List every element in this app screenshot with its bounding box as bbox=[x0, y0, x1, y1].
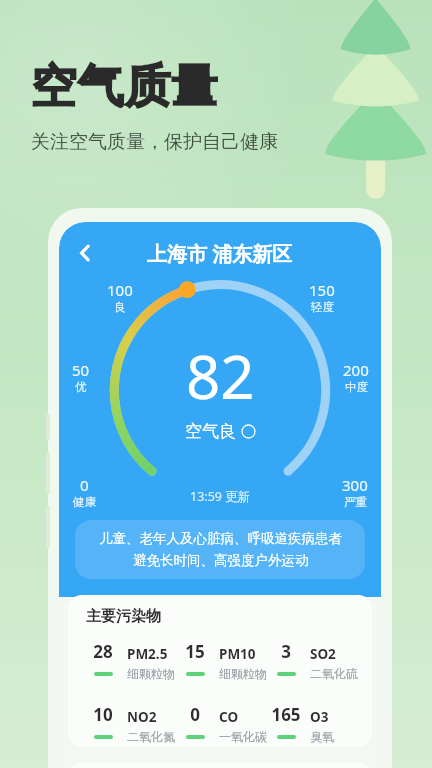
staticText: 上海市 浦东新区 bbox=[147, 240, 293, 267]
staticText: 空气良 bbox=[185, 421, 236, 442]
staticText: 100 bbox=[107, 280, 133, 300]
button[interactable]: 空气良 bbox=[185, 421, 256, 442]
button[interactable]: 165 bbox=[269, 703, 360, 744]
staticText: 200 bbox=[343, 360, 369, 380]
button[interactable]: 0 bbox=[178, 703, 269, 744]
staticText: 82 bbox=[186, 335, 255, 417]
staticText: 严重 bbox=[344, 495, 367, 509]
staticText: 空气质量 bbox=[30, 58, 218, 116]
staticText: PM2.5 bbox=[127, 645, 168, 663]
staticText: SO2 bbox=[310, 645, 336, 663]
staticText: 165 bbox=[269, 703, 303, 726]
staticText: 28 bbox=[86, 640, 120, 663]
button[interactable]: 10 bbox=[86, 703, 178, 744]
button[interactable]: 15 bbox=[178, 640, 269, 681]
staticText: CO bbox=[219, 708, 239, 726]
staticText: 良 bbox=[114, 300, 126, 314]
staticText: 150 bbox=[309, 280, 335, 300]
staticText: O3 bbox=[310, 708, 329, 726]
staticText: 中度 bbox=[345, 380, 368, 394]
staticText: NO2 bbox=[127, 708, 157, 726]
staticText: 3 bbox=[269, 640, 303, 663]
staticText: 300 bbox=[342, 475, 368, 495]
staticText: 主要污染物 bbox=[86, 607, 161, 626]
button[interactable]: 28 bbox=[86, 640, 178, 681]
button[interactable]: 儿童、老年人及心脏病、呼吸道疾病患者 bbox=[75, 520, 365, 579]
staticText: 臭氧 bbox=[310, 729, 334, 744]
staticText: 0 bbox=[80, 475, 89, 495]
button[interactable]: Back bbox=[65, 233, 105, 273]
staticText: 一氧化碳 bbox=[219, 729, 267, 744]
staticText: 二氧化氮 bbox=[127, 729, 175, 744]
staticText: 关注空气质量，保护自己健康 bbox=[31, 130, 278, 154]
staticText: 10 bbox=[86, 703, 120, 726]
staticText: PM10 bbox=[219, 645, 256, 663]
other: Info bbox=[241, 424, 256, 439]
button[interactable]: 3 bbox=[269, 640, 360, 681]
staticText: 二氧化硫 bbox=[310, 666, 358, 681]
staticText: 健康 bbox=[73, 495, 96, 509]
staticText: 13:59 更新 bbox=[190, 488, 251, 505]
staticText: 15 bbox=[178, 640, 212, 663]
staticText: 细颗粒物 bbox=[127, 666, 175, 681]
staticText: 儿童、老年人及心脏病、呼吸道疾病患者 bbox=[99, 530, 342, 547]
staticText: 避免长时间、高强度户外运动 bbox=[133, 552, 309, 569]
staticText: 50 bbox=[72, 360, 90, 380]
staticText: 优 bbox=[75, 380, 87, 394]
staticText: 轻度 bbox=[311, 300, 334, 314]
staticText: 细颗粒物 bbox=[219, 666, 267, 681]
staticText: 0 bbox=[178, 703, 212, 726]
